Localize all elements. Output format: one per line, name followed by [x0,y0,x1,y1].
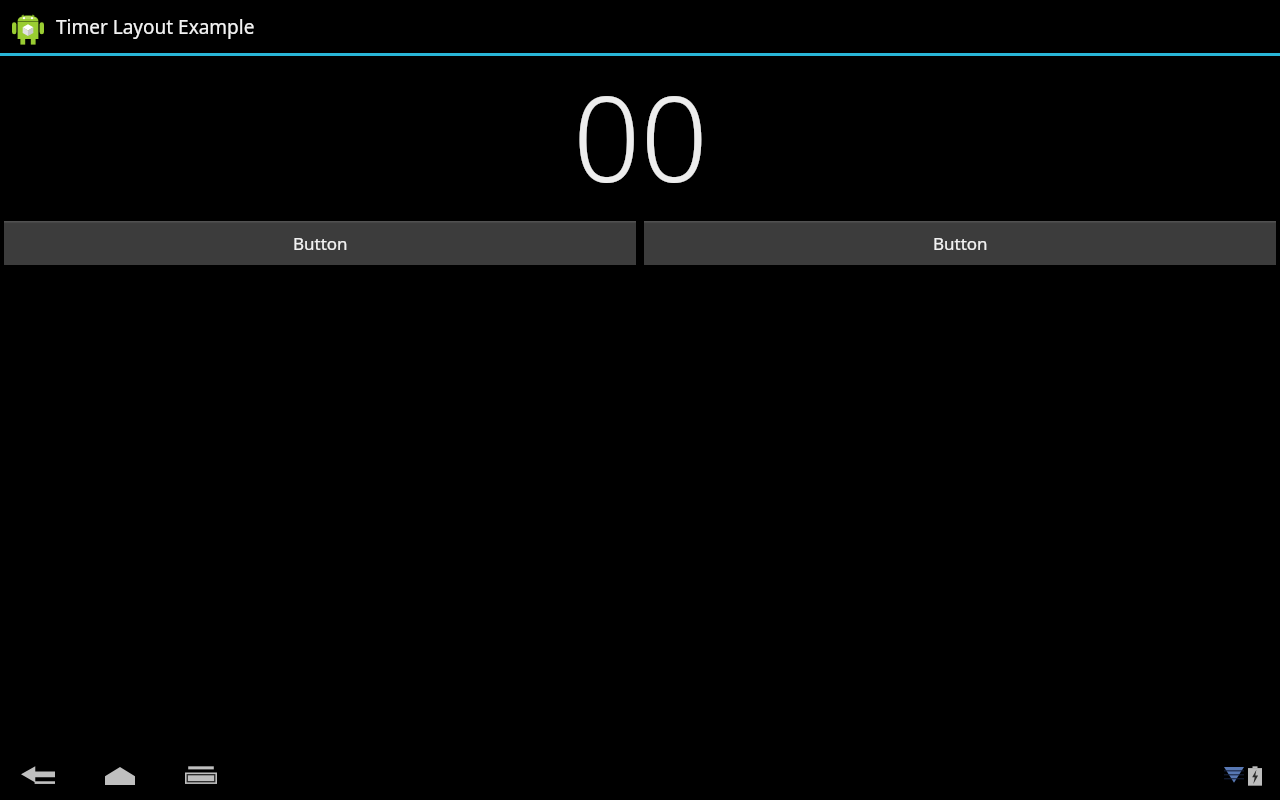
button[interactable]: Back [14,752,62,800]
button[interactable]: Home [96,752,144,800]
staticText: Button [933,232,988,255]
staticText: 00 [573,56,708,217]
staticText: Button [293,232,348,255]
button[interactable]: Button [4,221,636,265]
button[interactable]: Recent apps [177,752,225,800]
staticText: Timer Layout Example [56,14,255,40]
button[interactable]: Button [644,221,1276,265]
